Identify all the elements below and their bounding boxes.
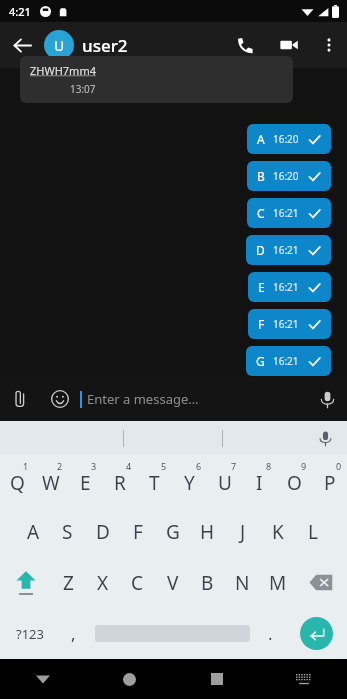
button[interactable]: I — [242, 455, 277, 506]
staticText: Z — [63, 570, 74, 596]
staticText: A — [27, 519, 40, 545]
button[interactable]: S — [50, 506, 85, 557]
button[interactable]: , — [59, 608, 88, 659]
button[interactable]: O — [277, 455, 312, 506]
staticText: E — [258, 279, 265, 295]
button[interactable]: Voice message — [307, 379, 347, 419]
staticText: Y — [184, 470, 195, 496]
button[interactable]: Enter — [285, 608, 347, 659]
staticText: M — [269, 570, 287, 596]
staticText: 5 — [161, 460, 167, 472]
button[interactable]: Switch keyboard — [260, 659, 347, 699]
button[interactable]: X — [85, 557, 120, 608]
button[interactable]: . — [256, 608, 285, 659]
button[interactable]: C — [247, 198, 331, 228]
staticText: 3 — [91, 460, 97, 472]
staticText: 16:20 — [273, 132, 299, 146]
button[interactable]: E — [68, 455, 102, 506]
staticText: B — [201, 570, 214, 596]
button[interactable]: R — [102, 455, 137, 506]
button[interactable]: H — [190, 506, 225, 557]
staticText: D — [256, 242, 265, 258]
button[interactable]: Home — [86, 659, 173, 699]
button[interactable]: Video call — [267, 23, 311, 67]
staticText: X — [97, 570, 109, 596]
button[interactable]: Y — [172, 455, 207, 506]
button[interactable]: Back — [0, 23, 44, 67]
button[interactable]: Shift — [0, 557, 51, 608]
staticText: A — [257, 131, 265, 147]
button[interactable]: C — [120, 557, 155, 608]
staticText: , — [71, 622, 76, 645]
button[interactable]: N — [225, 557, 260, 608]
staticText: 6 — [196, 460, 202, 472]
button[interactable]: Enter a message… — [80, 377, 307, 421]
button[interactable]: T — [137, 455, 172, 506]
button[interactable]: More options — [311, 27, 347, 63]
staticText: 16:21 — [273, 280, 299, 294]
button[interactable]: V — [155, 557, 190, 608]
staticText: L — [308, 519, 318, 545]
button[interactable]: K — [260, 506, 295, 557]
button[interactable]: D — [85, 506, 120, 557]
button[interactable]: D — [246, 235, 331, 265]
button[interactable]: Call — [223, 23, 267, 67]
button[interactable]: L — [295, 506, 330, 557]
staticText: U — [54, 36, 65, 55]
button[interactable]: W — [34, 455, 68, 506]
staticText: N — [235, 570, 250, 596]
button[interactable]: U — [44, 22, 223, 68]
button[interactable]: Space — [88, 608, 256, 659]
staticText: F — [258, 316, 265, 332]
staticText: K — [272, 519, 284, 545]
staticText: C — [257, 205, 265, 221]
staticText: P — [324, 470, 336, 496]
button[interactable]: E — [248, 272, 331, 302]
button[interactable]: Backspace — [295, 557, 347, 608]
button[interactable]: Q — [0, 455, 34, 506]
staticText: 4:21 — [9, 4, 31, 19]
button[interactable]: Recents — [173, 659, 260, 699]
button[interactable]: U — [207, 455, 242, 506]
button[interactable]: Attach — [0, 379, 40, 419]
staticText: 13:07 — [70, 82, 96, 96]
staticText: 16:21 — [273, 317, 299, 331]
staticText: 8 — [266, 460, 272, 472]
button[interactable]: Emoji — [40, 379, 80, 419]
staticText: B — [257, 168, 265, 184]
staticText: 1 — [23, 460, 29, 472]
button[interactable]: G — [246, 346, 331, 376]
staticText: 7 — [231, 460, 237, 472]
staticText: 16:21 — [273, 243, 299, 257]
staticText: 4 — [126, 460, 132, 472]
staticText: I — [256, 470, 263, 496]
staticText: 16:21 — [273, 206, 299, 220]
button[interactable]: ZHWH7mm4 — [20, 56, 293, 103]
staticText: J — [240, 519, 246, 545]
staticText: C — [131, 570, 144, 596]
button[interactable]: B — [190, 557, 225, 608]
button[interactable]: F — [248, 309, 331, 339]
button[interactable]: Z — [51, 557, 85, 608]
staticText: V — [167, 570, 179, 596]
button[interactable]: G — [155, 506, 190, 557]
button[interactable]: A — [247, 124, 331, 154]
button[interactable]: P — [312, 455, 347, 506]
staticText: user2 — [82, 34, 128, 57]
staticText: . — [268, 622, 273, 645]
button[interactable]: F — [120, 506, 155, 557]
button[interactable]: A — [16, 506, 50, 557]
button[interactable]: M — [260, 557, 295, 608]
staticText: 9 — [301, 460, 307, 472]
button[interactable]: Voice input — [311, 424, 339, 452]
staticText: Q — [10, 470, 25, 496]
button[interactable]: J — [225, 506, 260, 557]
staticText: E — [80, 470, 91, 496]
button[interactable]: B — [247, 161, 331, 191]
staticText: S — [62, 519, 73, 545]
button[interactable]: ?123 — [0, 608, 59, 659]
staticText: G — [166, 519, 180, 545]
button[interactable]: Hide keyboard — [0, 659, 86, 699]
staticText: U — [218, 470, 232, 496]
staticText: W — [42, 470, 60, 496]
